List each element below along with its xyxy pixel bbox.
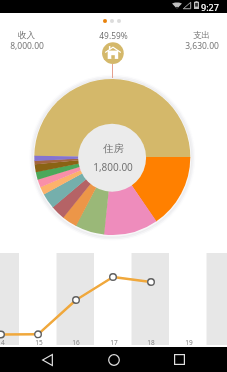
staticText: 9:27 xyxy=(201,1,219,13)
staticText: 15 xyxy=(35,338,43,347)
staticText: 8,000.00 xyxy=(10,40,44,52)
staticText: 16 xyxy=(72,338,80,347)
staticText: 49.59% xyxy=(99,30,128,41)
button[interactable]: Housing category xyxy=(101,41,125,65)
button[interactable]: Recent apps xyxy=(164,347,194,372)
staticText: 14 xyxy=(0,338,5,347)
staticText: 1,800.00 xyxy=(93,160,133,174)
staticText: 支出 xyxy=(193,30,211,41)
staticText: 18 xyxy=(147,338,155,347)
button[interactable]: Back xyxy=(32,347,62,372)
staticText: 3,630.00 xyxy=(185,40,219,52)
staticText: 住房 xyxy=(103,142,124,154)
staticText: 19 xyxy=(185,338,193,347)
staticText: 收入 xyxy=(18,30,36,41)
staticText: 17 xyxy=(110,338,118,347)
button[interactable]: Home xyxy=(99,347,129,372)
